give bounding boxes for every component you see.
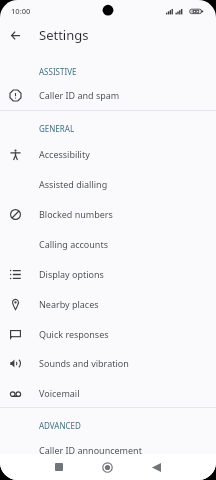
- button[interactable]: Nearby places: [0, 288, 216, 318]
- staticText: Calling accounts: [39, 238, 108, 250]
- button[interactable]: Home: [95, 455, 119, 479]
- button[interactable]: Calling accounts: [0, 228, 216, 258]
- button[interactable]: Accessibility: [0, 138, 216, 168]
- staticText: Blocked numbers: [39, 208, 113, 220]
- staticText: ASSISTIVE: [39, 66, 77, 77]
- staticText: Voicemail: [39, 387, 80, 399]
- staticText: Caller ID announcement: [39, 444, 142, 456]
- button[interactable]: Recent apps: [47, 455, 71, 479]
- staticText: Nearby places: [39, 298, 99, 310]
- staticText: GENERAL: [39, 123, 75, 134]
- button[interactable]: Caller ID and spam: [0, 79, 216, 109]
- button[interactable]: Voicemail: [0, 377, 216, 407]
- staticText: 10:00: [11, 6, 31, 16]
- button[interactable]: Navigate up: [3, 23, 28, 48]
- button[interactable]: Assisted dialling: [0, 168, 216, 198]
- staticText: ADVANCED: [39, 420, 81, 431]
- button[interactable]: Sounds and vibration: [0, 347, 216, 377]
- staticText: Display options: [39, 268, 104, 280]
- staticText: Assisted dialling: [39, 178, 108, 190]
- button[interactable]: Display options: [0, 258, 216, 288]
- button[interactable]: Quick responses: [0, 318, 216, 348]
- staticText: Accessibility: [39, 148, 90, 160]
- button[interactable]: Blocked numbers: [0, 198, 216, 228]
- button[interactable]: Caller ID announcement: [0, 434, 216, 464]
- button[interactable]: Back: [144, 455, 168, 479]
- staticText: Sounds and vibration: [39, 357, 129, 369]
- staticText: Caller ID and spam: [39, 89, 120, 101]
- staticText: Settings: [39, 26, 89, 44]
- staticText: Quick responses: [39, 328, 109, 340]
